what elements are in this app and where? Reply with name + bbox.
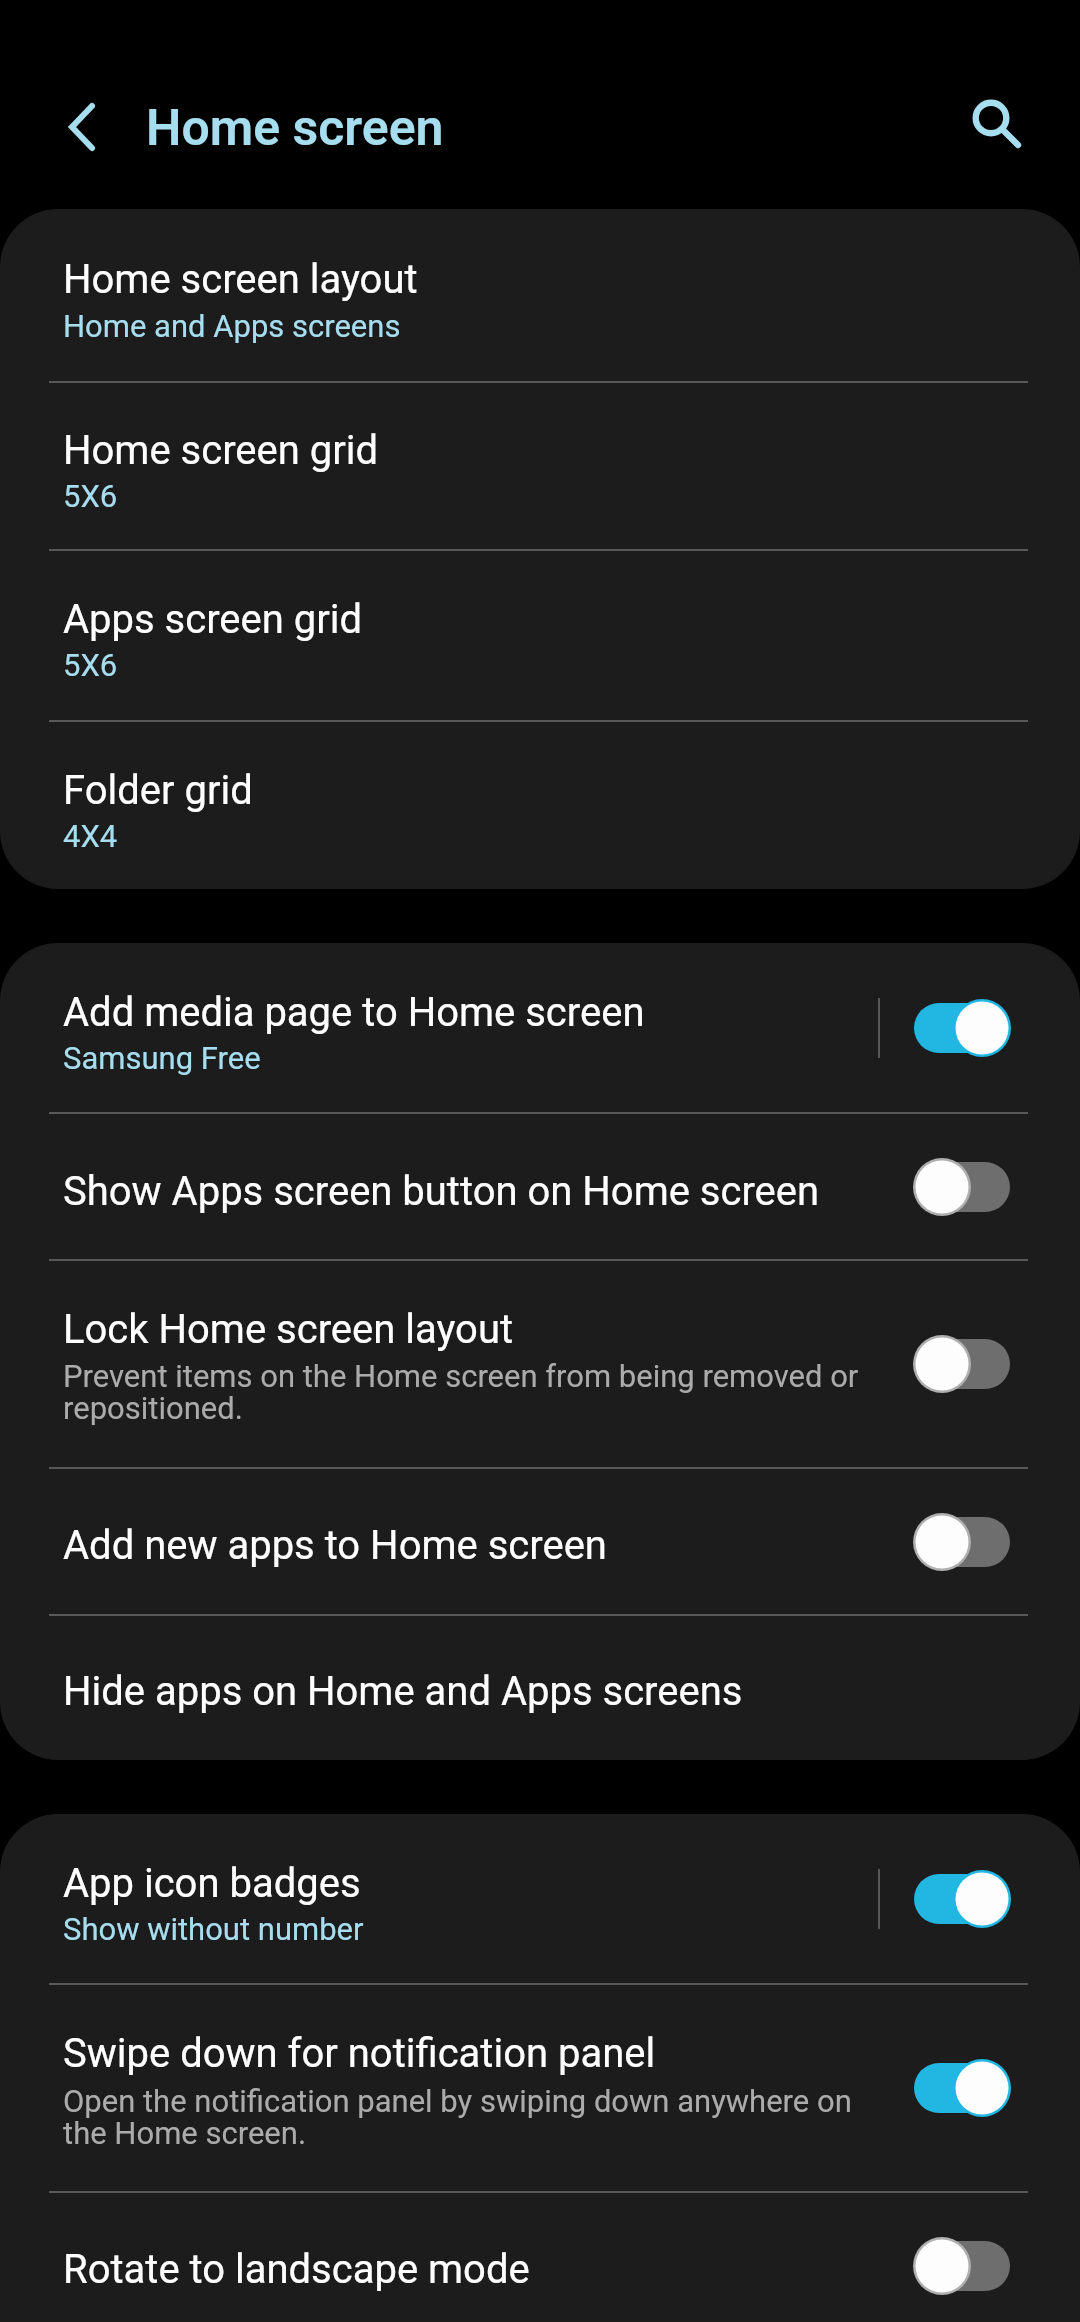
- staticText: Home screen grid: [63, 427, 379, 474]
- staticText: Home screen: [146, 99, 444, 158]
- button[interactable]: Rotate to landscape mode: [0, 2193, 1080, 2322]
- button[interactable]: Lock Home screen layout: [913, 1335, 1011, 1393]
- staticText: Samsung Free: [63, 1044, 883, 1076]
- staticText: Home screen layout: [63, 256, 418, 303]
- staticText: 5X6: [63, 651, 883, 683]
- staticText: Add media page to Home screen: [63, 989, 645, 1036]
- button[interactable]: App icon badges: [0, 1814, 1080, 1983]
- button[interactable]: Show Apps screen button on Home screen: [913, 1158, 1011, 1216]
- staticText: 4X4: [63, 822, 883, 854]
- staticText: Open the notification panel by swiping d…: [63, 2087, 863, 2151]
- staticText: Home and Apps screens: [63, 312, 883, 344]
- staticText: Show without number: [63, 1915, 883, 1947]
- button[interactable]: Search: [954, 81, 1038, 165]
- button[interactable]: Add new apps to Home screen: [0, 1469, 1080, 1614]
- staticText: Add new apps to Home screen: [63, 1522, 607, 1569]
- staticText: App icon badges: [63, 1860, 361, 1907]
- button[interactable]: Navigate up: [40, 85, 124, 169]
- button[interactable]: Hide apps on Home and Apps screens: [0, 1616, 1080, 1760]
- button[interactable]: Home screen layout: [0, 209, 1080, 381]
- staticText: Apps screen grid: [63, 596, 363, 643]
- staticText: Swipe down for notification panel: [63, 2030, 656, 2077]
- button[interactable]: Lock Home screen layout: [0, 1261, 1080, 1467]
- staticText: 5X6: [63, 482, 883, 514]
- button[interactable]: Apps screen grid: [0, 551, 1080, 720]
- button[interactable]: App icon badges: [913, 1870, 1011, 1928]
- staticText: Prevent items on the Home screen from be…: [63, 1362, 863, 1426]
- button[interactable]: Home screen grid: [0, 383, 1080, 549]
- button[interactable]: Swipe down for notification panel: [0, 1985, 1080, 2191]
- staticText: Folder grid: [63, 767, 253, 814]
- button[interactable]: Swipe down for notification panel: [913, 2059, 1011, 2117]
- button[interactable]: Folder grid: [0, 722, 1080, 889]
- staticText: Show Apps screen button on Home screen: [63, 1168, 820, 1215]
- button[interactable]: Add media page to Home screen: [913, 999, 1011, 1057]
- button[interactable]: Show Apps screen button on Home screen: [0, 1114, 1080, 1259]
- button[interactable]: Rotate to landscape mode: [913, 2237, 1011, 2295]
- button[interactable]: Add media page to Home screen: [0, 943, 1080, 1112]
- staticText: Hide apps on Home and Apps screens: [63, 1668, 743, 1715]
- staticText: Lock Home screen layout: [63, 1306, 514, 1353]
- button[interactable]: Add new apps to Home screen: [913, 1513, 1011, 1571]
- staticText: Rotate to landscape mode: [63, 2246, 530, 2293]
